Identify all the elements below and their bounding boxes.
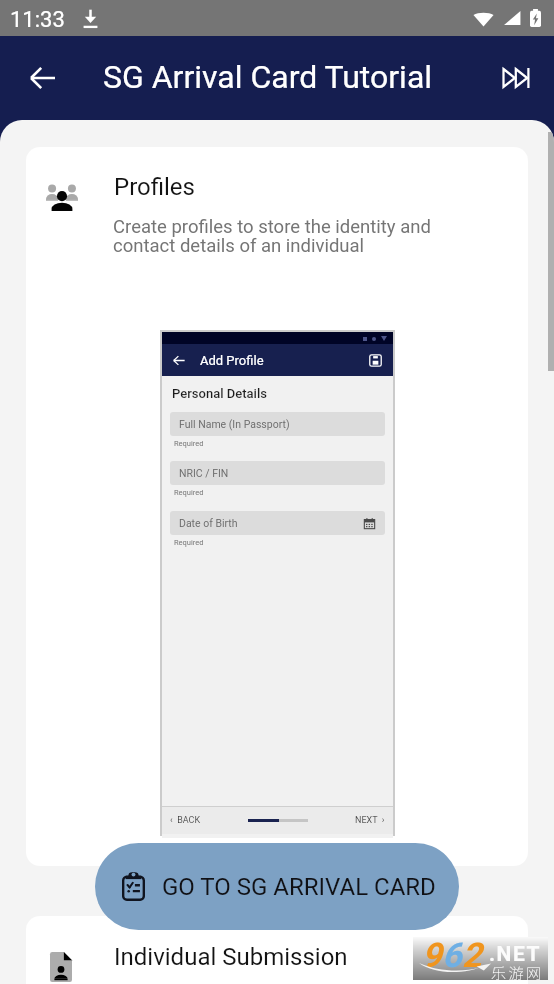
button[interactable]: Individual Submission xyxy=(26,916,528,984)
button[interactable]: Skip xyxy=(491,52,543,104)
staticText: .NET xyxy=(489,942,541,967)
staticText: 乐游网 xyxy=(491,962,544,984)
staticText: Required xyxy=(174,439,204,448)
staticText: Personal Details xyxy=(172,386,267,401)
staticText: Add Profile xyxy=(200,353,264,368)
staticText: Date of Birth xyxy=(179,517,238,529)
staticText: 11:33 xyxy=(10,7,65,33)
button[interactable]: Profiles xyxy=(26,147,528,866)
staticText: 9 xyxy=(422,935,442,975)
staticText: Create profiles to store the identity an… xyxy=(113,216,443,256)
staticText: SG Arrival Card Tutorial xyxy=(103,58,433,96)
button[interactable]: GO TO SG ARRIVAL CARD xyxy=(95,843,459,930)
staticText: ‹ BACK xyxy=(170,815,201,826)
staticText: Full Name (In Passport) xyxy=(179,418,290,430)
staticText: Profiles xyxy=(114,173,195,201)
staticText: NRIC / FIN xyxy=(179,467,229,479)
staticText: Required xyxy=(174,538,204,547)
staticText: 2 xyxy=(462,935,482,975)
staticText: NEXT › xyxy=(355,815,385,826)
staticText: Individual Submission xyxy=(114,943,348,971)
staticText: Required xyxy=(174,488,204,497)
staticText: 6 xyxy=(442,935,462,975)
button[interactable]: Back xyxy=(17,52,69,104)
staticText: GO TO SG ARRIVAL CARD xyxy=(162,873,436,901)
